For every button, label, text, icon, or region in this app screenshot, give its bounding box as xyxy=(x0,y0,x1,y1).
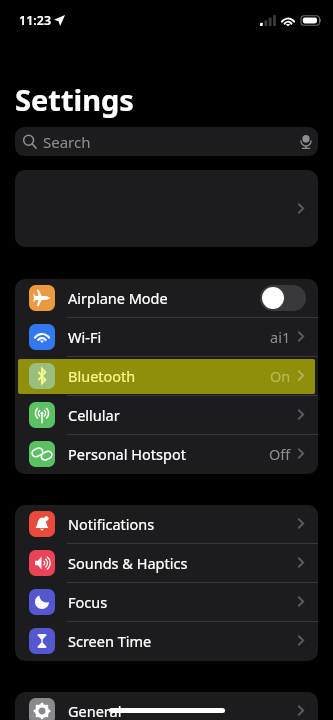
staticText: General xyxy=(68,701,122,720)
staticText: Focus xyxy=(68,592,108,612)
staticText: Notifications xyxy=(68,514,155,534)
button[interactable]: Cellular xyxy=(15,396,318,435)
staticText: Cellular xyxy=(68,405,120,425)
staticText: On xyxy=(270,366,291,386)
staticText: Bluetooth xyxy=(68,366,136,386)
staticText: 11:23 xyxy=(19,12,52,29)
button[interactable]: Focus xyxy=(15,583,318,622)
button[interactable]: Personal Hotspot xyxy=(15,435,318,474)
staticText: Airplane Mode xyxy=(68,288,168,308)
button[interactable]: Airplane Mode xyxy=(15,279,318,318)
staticText: Wi-Fi xyxy=(68,327,102,347)
button[interactable]: Search xyxy=(15,127,318,156)
staticText: ai1 xyxy=(270,327,291,347)
staticText: Sounds & Haptics xyxy=(68,553,188,573)
button[interactable]: Wi-Fi xyxy=(15,318,318,357)
button[interactable]: Screen Time xyxy=(15,622,318,661)
staticText: Personal Hotspot xyxy=(68,444,186,464)
staticText: Screen Time xyxy=(68,631,152,651)
staticText: Off xyxy=(269,444,291,464)
button[interactable]: Bluetooth xyxy=(15,357,318,396)
button[interactable]: General xyxy=(15,692,318,720)
staticText: Search xyxy=(43,132,91,152)
button[interactable]: Airplane Mode toggle xyxy=(260,285,306,311)
button[interactable]: Notifications xyxy=(15,505,318,544)
button[interactable]: Sounds & Haptics xyxy=(15,544,318,583)
button[interactable]: Settings xyxy=(15,80,134,119)
